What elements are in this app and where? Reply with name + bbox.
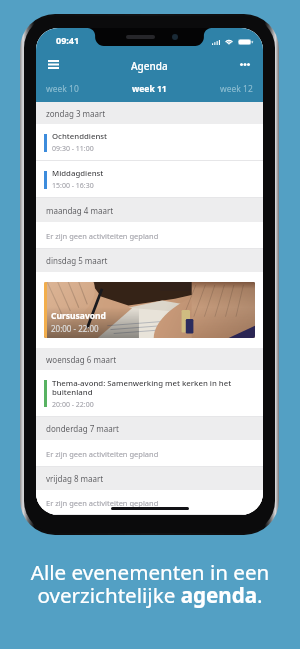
- staticText: Ochtenddienst: [52, 131, 108, 142]
- staticText: Agenda: [131, 59, 168, 73]
- button[interactable]: More options: [232, 51, 258, 77]
- staticText: week 10: [46, 83, 79, 95]
- staticText: vrijdag 8 maart: [46, 473, 104, 484]
- staticText: 09:41: [56, 34, 80, 46]
- staticText: dinsdag 5 maart: [46, 255, 108, 266]
- button[interactable]: Menu: [40, 51, 66, 77]
- staticText: 20:00 - 22:00: [52, 400, 94, 410]
- staticText: 15:00 - 16:30: [52, 181, 94, 191]
- staticText: zondag 3 maart: [46, 108, 106, 119]
- staticText: 09:30 - 11:00: [52, 144, 94, 154]
- button[interactable]: Thema-avond: Samenwerking met kerken in …: [36, 370, 263, 417]
- staticText: Er zijn geen activiteiten gepland: [46, 498, 159, 508]
- button[interactable]: Cursusavond: [44, 282, 255, 338]
- staticText: donderdag 7 maart: [46, 423, 119, 434]
- button[interactable]: week 11: [106, 78, 193, 100]
- staticText: Cursusavond: [51, 310, 106, 322]
- staticText: Er zijn geen activiteiten gepland: [46, 231, 159, 241]
- staticText: week 11: [132, 83, 167, 95]
- staticText: Er zijn geen activiteiten gepland: [46, 449, 159, 459]
- staticText: woensdag 6 maart: [46, 354, 117, 365]
- staticText: Middagdienst: [52, 168, 104, 179]
- staticText: 20:00 - 22:00: [51, 323, 99, 334]
- button[interactable]: week 12: [193, 78, 263, 100]
- staticText: Alle evenementen in een overzichtelijke …: [6, 558, 294, 609]
- button[interactable]: Middagdienst: [36, 161, 263, 198]
- staticText: maandag 4 maart: [46, 205, 114, 216]
- button[interactable]: Ochtenddienst: [36, 124, 263, 161]
- staticText: Thema-avond: Samenwerking met kerken in …: [52, 378, 241, 398]
- button[interactable]: week 10: [36, 78, 106, 100]
- staticText: week 12: [220, 83, 253, 95]
